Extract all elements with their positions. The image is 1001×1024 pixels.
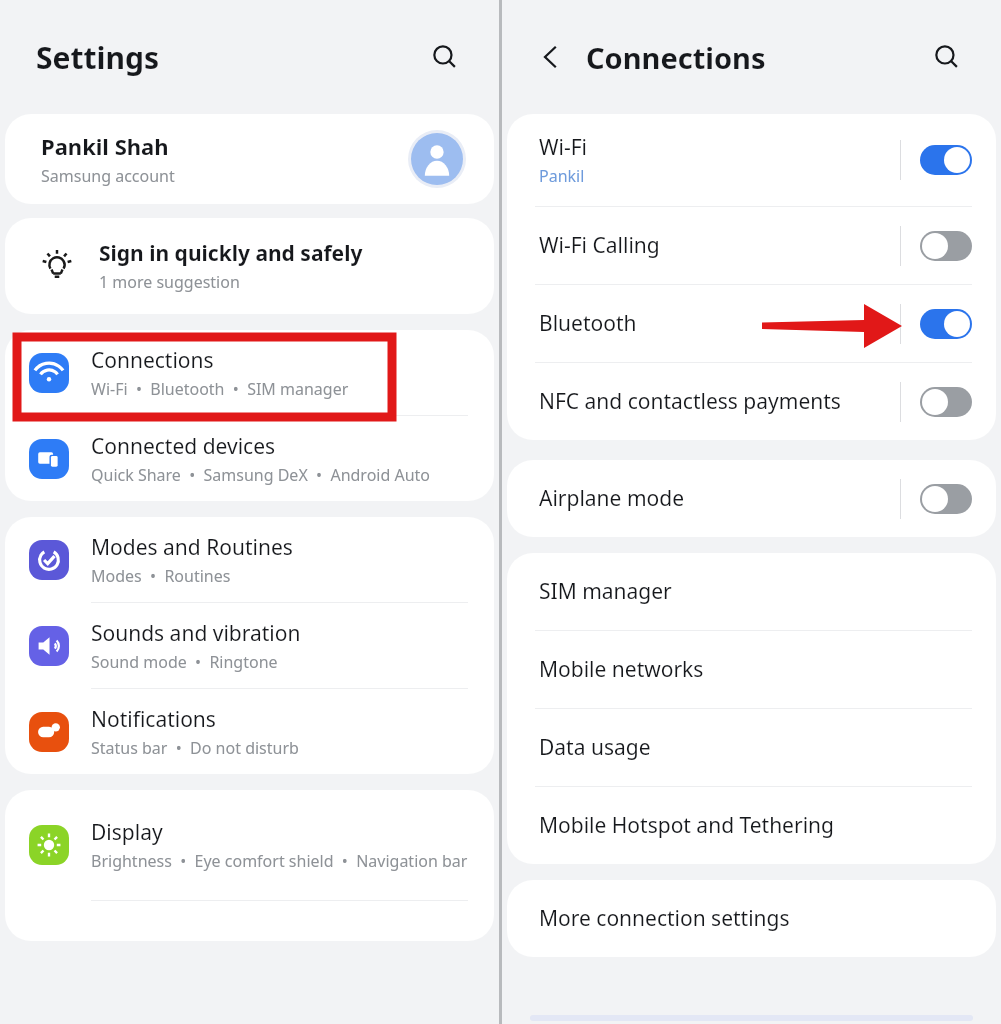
button[interactable]: Sounds and vibration	[5, 603, 494, 688]
button[interactable]: Off	[920, 231, 972, 261]
staticText: More connection settings	[539, 904, 790, 933]
button[interactable]: Airplane mode	[507, 460, 996, 537]
button[interactable]: Connected devices	[5, 416, 494, 501]
button[interactable]: Search	[421, 33, 469, 81]
button[interactable]: Notifications	[5, 689, 494, 774]
staticText: Connections	[91, 346, 214, 375]
staticText: Airplane mode	[539, 484, 685, 513]
button[interactable]: On	[920, 309, 972, 339]
button[interactable]: Bluetooth	[507, 285, 996, 362]
staticText: Modes • Routines	[91, 565, 231, 587]
button[interactable]: Off	[920, 484, 972, 514]
button[interactable]: Connections	[5, 330, 494, 415]
staticText: Quick Share • Samsung DeX • Android Auto	[91, 464, 431, 486]
staticText: Wi-Fi • Bluetooth • SIM manager	[91, 378, 349, 400]
staticText: Sign in quickly and safely	[99, 239, 363, 268]
staticText: Settings	[36, 37, 159, 78]
button[interactable]: Search	[923, 33, 971, 81]
button[interactable]: More connection settings	[507, 880, 996, 957]
button[interactable]: Sign in quickly and safely	[5, 218, 494, 314]
staticText: Samsung account	[41, 165, 175, 187]
button[interactable]: NFC and contactless payments	[507, 363, 996, 440]
staticText: Data usage	[539, 733, 651, 762]
staticText: Wi-Fi Calling	[539, 231, 660, 260]
button[interactable]: Display	[5, 790, 494, 900]
button[interactable]: Back	[528, 34, 574, 80]
button[interactable]: Off	[920, 387, 972, 417]
staticText: Notifications	[91, 705, 216, 734]
staticText: Mobile networks	[539, 655, 704, 684]
staticText: Pankil	[539, 165, 585, 187]
staticText: Connected devices	[91, 432, 276, 461]
staticText: NFC and contactless payments	[539, 387, 841, 416]
button[interactable]: Data usage	[507, 709, 996, 786]
staticText: Brightness • Eye comfort shield • Naviga…	[91, 850, 468, 872]
button[interactable]: Wi-Fi	[507, 114, 996, 206]
staticText: Status bar • Do not disturb	[91, 737, 299, 759]
staticText: Sound mode • Ringtone	[91, 651, 278, 673]
staticText: SIM manager	[539, 577, 672, 606]
button[interactable]: Pankil Shah	[5, 114, 494, 204]
button[interactable]: Mobile networks	[507, 631, 996, 708]
staticText: 1 more suggestion	[99, 271, 240, 293]
staticText: Pankil Shah	[41, 131, 169, 161]
staticText: Mobile Hotspot and Tethering	[539, 811, 834, 840]
button[interactable]: On	[920, 145, 972, 175]
staticText: Display	[91, 818, 163, 847]
button[interactable]: SIM manager	[507, 553, 996, 630]
staticText: Modes and Routines	[91, 533, 293, 562]
staticText: Wi-Fi	[539, 133, 588, 162]
staticText: Sounds and vibration	[91, 619, 301, 648]
button[interactable]: Modes and Routines	[5, 517, 494, 602]
button[interactable]: Wi-Fi Calling	[507, 207, 996, 284]
staticText: Bluetooth	[539, 309, 637, 338]
button[interactable]: Mobile Hotspot and Tethering	[507, 787, 996, 864]
staticText: Connections	[586, 38, 766, 77]
